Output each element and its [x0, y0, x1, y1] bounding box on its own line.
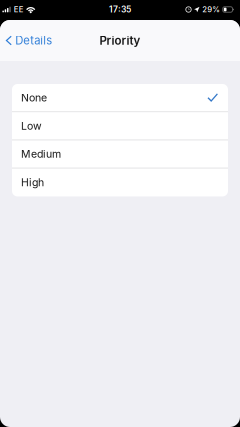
staticText: Medium	[21, 148, 61, 160]
staticText: 29%	[202, 5, 220, 14]
staticText: High	[21, 176, 44, 189]
staticText: Low	[21, 119, 42, 132]
button[interactable]: Low	[12, 112, 228, 140]
button[interactable]: Medium	[12, 140, 228, 168]
staticText: 17:35	[109, 4, 131, 15]
staticText: Details	[15, 34, 52, 47]
button[interactable]: None	[12, 84, 228, 112]
staticText: EE	[14, 5, 24, 14]
button[interactable]: High	[12, 168, 228, 196]
staticText: None	[21, 91, 47, 104]
button[interactable]: Details	[0, 27, 58, 54]
staticText: Priority	[99, 34, 140, 47]
